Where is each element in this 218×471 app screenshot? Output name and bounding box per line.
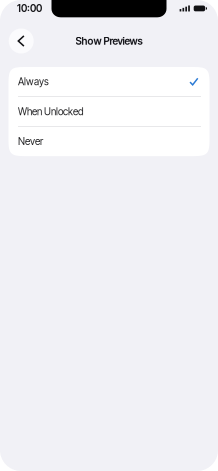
staticText: When Unlocked <box>18 106 84 117</box>
staticText: Show Previews <box>75 35 142 47</box>
button[interactable]: When Unlocked <box>8 97 209 126</box>
staticText: 10:00 <box>17 2 42 14</box>
button[interactable]: Always <box>8 67 209 96</box>
staticText: Always <box>18 76 49 87</box>
staticText: Never <box>18 135 43 147</box>
button[interactable]: Back <box>9 28 34 53</box>
button[interactable]: Never <box>8 127 209 156</box>
